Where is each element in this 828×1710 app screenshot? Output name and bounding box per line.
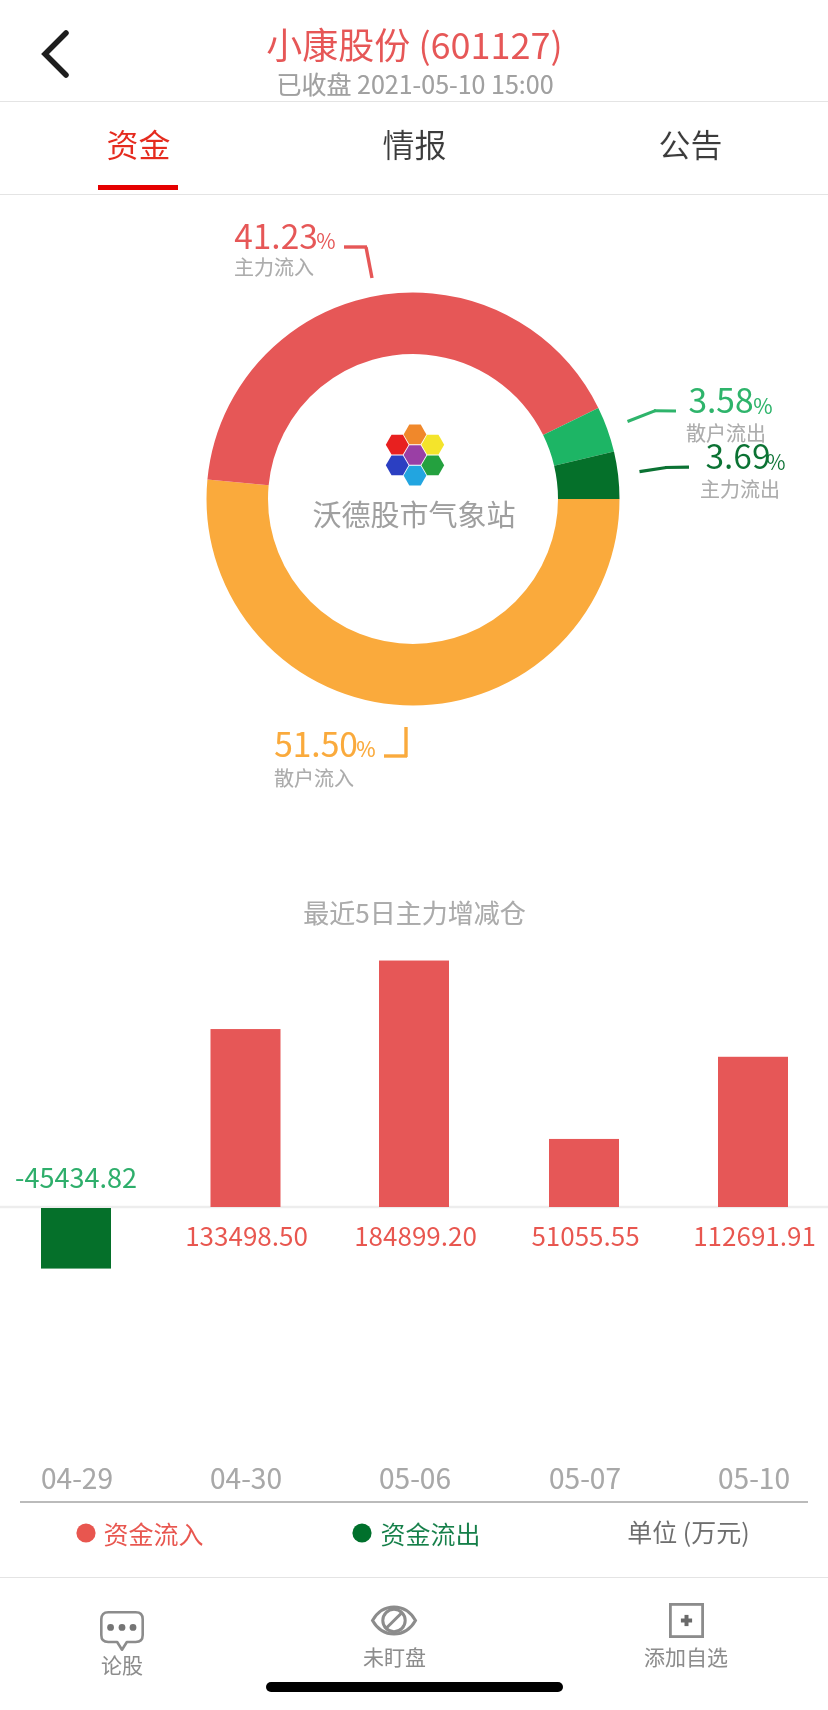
button[interactable]: 情报 — [276, 102, 552, 194]
staticText: 添加自选 — [644, 1641, 728, 1671]
staticText: 情报 — [382, 120, 447, 166]
staticText: 04-29 — [41, 1457, 113, 1498]
staticText: 133498.50 — [185, 1216, 308, 1254]
staticText: 小康股份 (601127) — [266, 17, 563, 69]
staticText: 05-10 — [718, 1457, 790, 1498]
staticText: % — [316, 225, 336, 255]
staticText: 未盯盘 — [363, 1641, 426, 1671]
staticText: 05-06 — [379, 1457, 451, 1498]
staticText: 主力流入 — [234, 252, 314, 281]
staticText: 41.23 — [234, 210, 318, 259]
staticText: 资金流出 — [380, 1515, 481, 1551]
button[interactable] — [566, 1586, 806, 1692]
staticText: 最近5日主力增减仓 — [303, 893, 526, 931]
button[interactable]: 公告 — [552, 102, 828, 194]
staticText: 资金 — [106, 120, 171, 166]
staticText: 05-07 — [549, 1457, 621, 1498]
button[interactable] — [274, 1586, 514, 1692]
staticText: 184899.20 — [354, 1216, 477, 1254]
staticText: 3.69 — [705, 430, 771, 479]
staticText: 论股 — [101, 1649, 143, 1679]
staticText: % — [753, 390, 773, 420]
staticText: 散户流出 — [686, 418, 766, 447]
staticText: % — [766, 446, 786, 476]
staticText: 散户流入 — [274, 763, 354, 792]
button[interactable] — [2, 1586, 242, 1692]
staticText: % — [356, 733, 376, 763]
button[interactable]: 资金 — [0, 102, 276, 194]
staticText: 已收盘 2021-05-10 15:00 — [276, 65, 554, 101]
staticText: 51.50 — [274, 718, 358, 767]
staticText: 资金流入 — [103, 1515, 204, 1551]
staticText: -45434.82 — [15, 1157, 137, 1196]
staticText: 3.58 — [688, 374, 754, 423]
staticText: 04-30 — [210, 1457, 282, 1498]
staticText: 112691.91 — [693, 1216, 816, 1254]
staticText: 51055.55 — [531, 1216, 640, 1254]
button[interactable]: Back — [14, 18, 98, 90]
staticText: 主力流出 — [700, 474, 780, 503]
staticText: 公告 — [658, 120, 723, 166]
staticText: 沃德股市气象站 — [312, 492, 516, 534]
staticText: 单位 (万元) — [627, 1513, 750, 1549]
